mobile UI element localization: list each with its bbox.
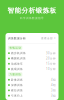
staticText: 椭圆机训练 — [11, 57, 26, 60]
staticText: 科学训练数据指导 — [20, 16, 44, 20]
button[interactable]: 卧推训练 — [5, 77, 58, 82]
staticText: 10分钟 — [46, 67, 56, 71]
button[interactable]: 跳绳训练 — [5, 66, 58, 72]
staticText: 跳绳训练 — [11, 67, 23, 71]
staticText: 4组 — [51, 83, 56, 87]
staticText: 20分钟 — [46, 57, 56, 60]
staticText: 卧推训练 — [11, 78, 23, 81]
staticText: 深蹲训练 — [11, 83, 23, 87]
button[interactable]: 椭圆机训练 — [5, 56, 58, 61]
staticText: 训练数据分析 — [8, 37, 26, 40]
staticText: 力量训练 — [9, 73, 21, 76]
button[interactable]: 查看全部 > — [41, 36, 56, 40]
staticText: 有氧运动 — [9, 46, 21, 49]
staticText: 跑步机训练 — [11, 51, 26, 55]
staticText: 4组 — [51, 78, 56, 81]
staticText: 15分钟 — [46, 62, 56, 65]
staticText: 硬拉训练 — [11, 89, 23, 92]
button[interactable]: 引体向上 — [5, 93, 58, 98]
staticText: 3组 — [51, 94, 56, 97]
staticText: 引体向上 — [11, 94, 23, 97]
staticText: 3组 — [51, 89, 56, 92]
staticText: 查看全部 > — [41, 36, 56, 40]
button[interactable]: 跑步机训练 — [5, 50, 58, 56]
button[interactable]: 深蹲训练 — [5, 82, 58, 88]
staticText: 动感单车 — [11, 62, 23, 65]
button[interactable]: 硬拉训练 — [5, 88, 58, 93]
staticText: 30分钟 — [46, 51, 56, 55]
staticText: 智能分析锻炼板 — [7, 6, 56, 15]
button[interactable]: 动感单车 — [5, 61, 58, 66]
